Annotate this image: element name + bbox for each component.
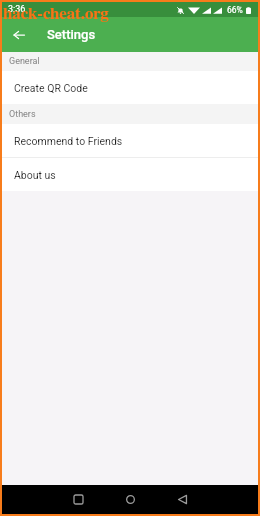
button[interactable]: Recent apps xyxy=(52,485,104,514)
staticText: Recommend to Friends xyxy=(14,135,123,147)
staticText: Settings xyxy=(47,27,96,42)
button[interactable]: Create QR Code xyxy=(2,71,258,104)
button[interactable]: About us xyxy=(2,158,258,191)
staticText: General xyxy=(9,56,40,67)
staticText: Create QR Code xyxy=(14,82,88,94)
staticText: hack-cheat.org xyxy=(3,5,109,22)
staticText: 66% xyxy=(227,5,243,15)
button[interactable]: Navigate up xyxy=(2,17,36,52)
staticText: 3:36 xyxy=(8,4,26,15)
button[interactable]: Home xyxy=(104,485,156,514)
staticText: Others xyxy=(9,109,36,120)
button[interactable]: Back xyxy=(156,485,208,514)
button[interactable]: Recommend to Friends xyxy=(2,124,258,157)
staticText: About us xyxy=(14,169,56,181)
